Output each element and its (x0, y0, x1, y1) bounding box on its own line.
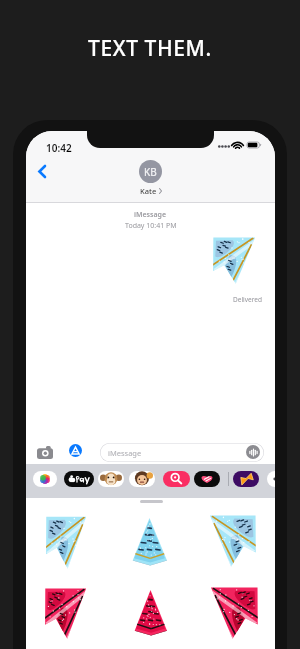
button[interactable]: Back (32, 158, 52, 184)
button[interactable]: Red bandana cone sticker (134, 589, 167, 636)
staticText: iMessage (134, 210, 167, 220)
staticText: TEXT THEM. (88, 34, 212, 63)
button[interactable]: Camera (34, 441, 56, 463)
staticText: Today 10:41 PM (125, 221, 177, 231)
staticText: Delivered (233, 295, 262, 304)
button[interactable]: App (194, 471, 220, 487)
button[interactable]: App (163, 471, 190, 487)
staticText: KB (144, 165, 157, 179)
button[interactable]: App (129, 471, 155, 487)
button[interactable]: App (267, 471, 275, 487)
staticText: 10:42 (46, 141, 72, 155)
button[interactable]: App Store (69, 444, 82, 457)
staticText: iMessage (108, 448, 142, 458)
button[interactable]: Record audio message (246, 445, 260, 459)
button[interactable]: iMessage (100, 443, 264, 462)
button[interactable]: Blue bandana sticker flipped (209, 514, 257, 568)
button[interactable]: App (98, 471, 124, 487)
button[interactable]: KB (26, 160, 275, 196)
button[interactable]: Blue bandana cone sticker (132, 517, 167, 566)
button[interactable]: Blue bandana sticker (45, 515, 87, 570)
staticText: Kate (140, 186, 157, 196)
button[interactable]: App (64, 471, 94, 487)
button[interactable]: Red bandana sticker flipped (210, 586, 259, 640)
button[interactable]: App (33, 471, 57, 487)
button[interactable]: Red bandana sticker (44, 587, 87, 640)
button[interactable]: App (233, 471, 259, 487)
